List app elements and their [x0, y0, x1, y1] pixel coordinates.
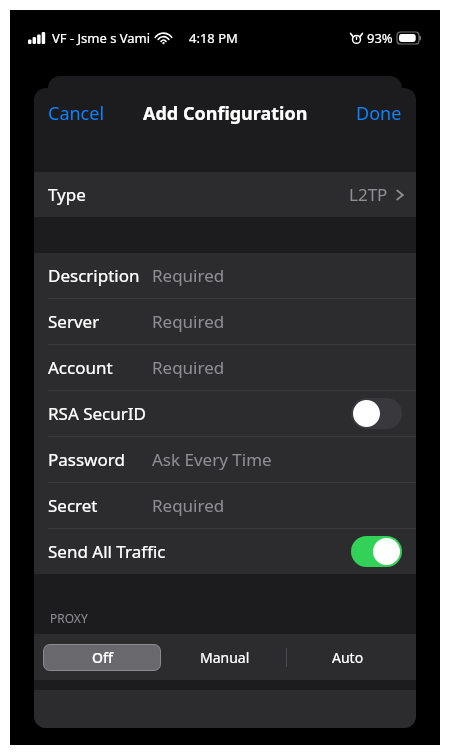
button[interactable]: Cancel: [34, 93, 119, 134]
staticText: Required: [152, 310, 225, 333]
button[interactable]: Password: [34, 437, 416, 482]
button[interactable]: Done: [342, 93, 416, 134]
staticText: PROXY: [50, 610, 88, 626]
staticText: Auto: [332, 648, 364, 667]
staticText: Password: [48, 448, 125, 471]
button[interactable]: Server: [34, 299, 416, 344]
staticText: Description: [48, 264, 140, 287]
button[interactable]: Toggle RSA SecurID: [351, 398, 402, 429]
button[interactable]: RSA SecurID: [34, 391, 416, 436]
button[interactable]: Toggle Send All Traffic: [351, 536, 402, 567]
staticText: Off: [92, 648, 113, 667]
staticText: Send All Traffic: [48, 540, 166, 563]
button[interactable]: Type: [34, 172, 416, 217]
staticText: Required: [152, 264, 225, 287]
staticText: Add Configuration: [143, 101, 308, 126]
staticText: Cancel: [48, 101, 105, 126]
button[interactable]: Off: [43, 644, 161, 671]
staticText: Done: [356, 101, 402, 126]
button[interactable]: Auto: [286, 642, 409, 673]
staticText: 93%: [367, 29, 393, 47]
staticText: 4:18 PM: [189, 29, 238, 47]
staticText: Secret: [48, 494, 98, 517]
staticText: Server: [48, 310, 100, 333]
staticText: Required: [152, 494, 225, 517]
staticText: L2TP: [349, 183, 388, 206]
button[interactable]: Secret: [34, 483, 416, 528]
staticText: VF - Jsme s Vami: [52, 29, 151, 47]
staticText: Required: [152, 356, 225, 379]
button[interactable]: Account: [34, 345, 416, 390]
button[interactable]: Manual: [163, 642, 286, 673]
staticText: Account: [48, 356, 113, 379]
staticText: Ask Every Time: [152, 448, 272, 471]
staticText: RSA SecurID: [48, 402, 146, 425]
staticText: Type: [48, 183, 86, 206]
button[interactable]: Send All Traffic: [34, 529, 416, 574]
button[interactable]: Description: [34, 253, 416, 298]
staticText: Manual: [200, 648, 250, 667]
